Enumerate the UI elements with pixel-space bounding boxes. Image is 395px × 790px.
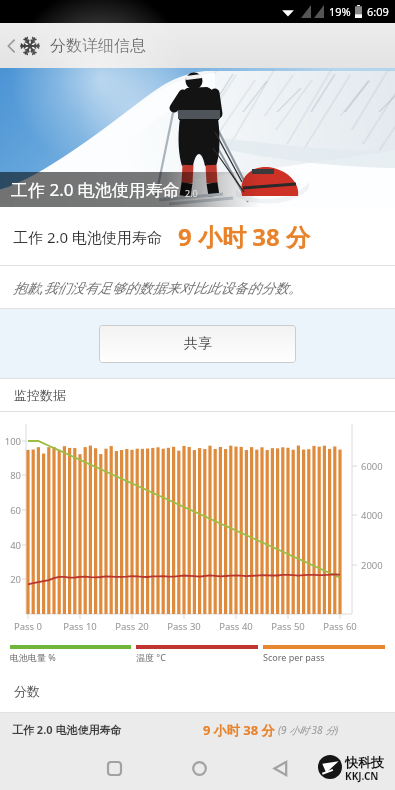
staticText: 快科技 [345,754,384,770]
staticText: 共享 [184,335,212,353]
button[interactable]: Back [256,752,304,784]
staticText: Pass 10 [58,620,102,633]
button[interactable]: Home [175,752,223,784]
staticText: KKJ.CN [345,769,379,783]
staticText: 工作 2.0 电池使用寿命 [12,722,122,737]
staticText: 工作 2.0 电池使用寿命 [11,178,180,201]
staticText: 分数详细信息 [50,36,146,56]
staticText: 40 [1,539,21,552]
staticText: (9 小时 38 分) [278,723,339,737]
staticText: Pass 0 [6,620,50,633]
staticText: 分数 [14,683,40,699]
staticText: 6000 [361,460,383,473]
staticText: 6:09 [367,4,389,19]
button[interactable]: Recent apps [90,752,138,784]
staticText: 9 小时 38 分 [203,721,275,739]
button[interactable]: Back [0,30,44,62]
staticText: 60 [1,504,21,517]
staticText: 电池电量 % [10,651,56,663]
staticText: 20 [1,573,21,586]
staticText: Pass 40 [214,620,258,633]
staticText: 80 [1,469,21,482]
button[interactable]: 共享 [99,325,296,363]
staticText: 监控数据 [14,387,66,403]
staticText: Score per pass [263,651,325,663]
staticText: 19% [329,4,351,19]
staticText: 4000 [361,509,383,522]
staticText: 9 小时 38 分 [178,220,310,253]
staticText: 抱歉,我们没有足够的数据来对比此设备的分数。 [13,278,302,297]
staticText: Pass 20 [110,620,154,633]
staticText: 2.0 [185,187,198,199]
staticText: 温度 °C [136,651,166,663]
staticText: 100 [1,435,21,448]
button[interactable]: 工作 2.0 电池使用寿命 [0,713,395,746]
staticText: Pass 60 [318,620,362,633]
staticText: 2000 [361,559,383,572]
staticText: 工作 2.0 电池使用寿命 [13,227,162,247]
staticText: Pass 30 [162,620,206,633]
staticText: Pass 50 [266,620,310,633]
